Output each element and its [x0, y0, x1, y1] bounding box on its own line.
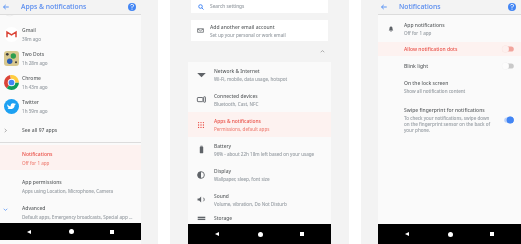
staticText: Storage	[214, 215, 233, 222]
button[interactable]: Home	[58, 223, 84, 240]
staticText: Notifications	[399, 2, 441, 11]
staticText: 96% - about 22h 18m left based on your u…	[214, 151, 315, 157]
staticText: Notifications	[22, 151, 53, 158]
staticText: Wi-Fi, mobile, data usage, hotspot	[214, 76, 288, 82]
staticText: Permissions, default apps	[214, 126, 270, 132]
staticText: Blink light	[404, 63, 495, 70]
button[interactable]: See all 97 apps	[0, 118, 141, 142]
button[interactable]: Storage	[188, 212, 331, 224]
button[interactable]: Chrome	[0, 70, 141, 94]
staticText: Apps & notifications	[21, 2, 87, 11]
button[interactable]: Search settings	[191, 0, 328, 13]
staticText: 1h 28m ago	[22, 60, 48, 66]
staticText: App notifications	[404, 22, 445, 29]
button[interactable]: Recent apps	[99, 223, 125, 240]
button[interactable]: Back	[0, 0, 11, 14]
staticText: Battery	[214, 143, 232, 150]
button[interactable]: Recent apps	[289, 224, 315, 244]
staticText: Apps & notifications	[214, 118, 261, 125]
staticText: Sound	[214, 193, 229, 200]
button[interactable]: Back	[394, 224, 420, 244]
button[interactable]: Two Dots	[0, 46, 141, 70]
staticText: App permissions	[22, 179, 62, 186]
staticText: Bluetooth, Cast, NFC	[214, 101, 259, 107]
staticText: Swipe fingerprint for notifications	[404, 107, 485, 114]
button[interactable]: Blink light	[378, 56, 521, 76]
staticText: Display	[214, 168, 232, 175]
button[interactable]: Allow notification dots	[378, 42, 521, 56]
button[interactable]: Apps & notifications	[188, 112, 331, 137]
staticText: Default apps, Emergency broadcasts, Spec…	[22, 214, 133, 220]
staticText: To check your notifications, swipe down …	[404, 115, 491, 133]
button[interactable]: Sound	[188, 187, 331, 212]
staticText: Gmail	[22, 27, 36, 34]
staticText: Off for 1 app	[404, 30, 432, 36]
button[interactable]: Home	[437, 224, 463, 244]
button[interactable]: Help	[503, 0, 521, 14]
staticText: Chrome	[22, 75, 41, 82]
button[interactable]: Add another email account	[191, 20, 328, 41]
button[interactable]: Help	[123, 0, 141, 14]
staticText: Network & Internet	[214, 68, 260, 75]
button[interactable]: Back	[16, 223, 42, 240]
staticText: Search settings	[210, 3, 245, 10]
staticText: Set up your personal or work email	[210, 32, 286, 38]
button[interactable]: Twitter	[0, 94, 141, 118]
staticText: Twitter	[22, 99, 39, 106]
staticText: Two Dots	[22, 51, 45, 58]
staticText: Advanced	[22, 205, 46, 212]
button[interactable]: Home	[247, 224, 273, 244]
button[interactable]: Advanced	[0, 196, 141, 222]
staticText: On the lock screen	[404, 80, 449, 87]
staticText: Wallpaper, sleep, font size	[214, 176, 270, 182]
staticText: 1h 59m ago	[22, 108, 48, 114]
button[interactable]: Connected devices	[188, 87, 331, 112]
staticText: Show all notification content	[404, 88, 466, 94]
button[interactable]: Gmail	[0, 22, 141, 46]
staticText: Add another email account	[210, 24, 275, 31]
staticText: Off for 1 app	[22, 160, 50, 166]
staticText: Apps using Location, Microphone, Camera	[22, 188, 114, 194]
button[interactable]: Recent apps	[479, 224, 505, 244]
button[interactable]: App permissions	[0, 170, 141, 196]
button[interactable]: Network & Internet	[188, 62, 331, 87]
staticText: 39m ago	[22, 36, 41, 42]
staticText: See all 97 apps	[22, 127, 58, 134]
button[interactable]: Back	[204, 224, 230, 244]
button[interactable]: Battery	[188, 137, 331, 162]
staticText: Volume, vibration, Do Not Disturb	[214, 201, 287, 207]
button[interactable]: App notifications	[378, 15, 521, 42]
button[interactable]: Display	[188, 162, 331, 187]
staticText: 1h 43m ago	[22, 84, 48, 90]
button[interactable]: Swipe fingerprint for notifications	[378, 97, 521, 138]
staticText: Connected devices	[214, 93, 258, 100]
button[interactable]: Back	[378, 0, 389, 14]
button[interactable]: On the lock screen	[378, 76, 521, 97]
button[interactable]: Notifications	[0, 145, 141, 170]
staticText: Allow notification dots	[404, 46, 495, 53]
